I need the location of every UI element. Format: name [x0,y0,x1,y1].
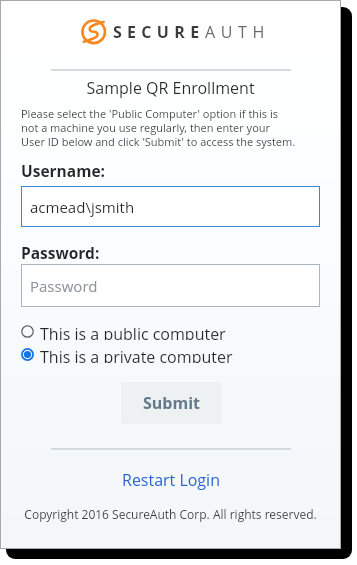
staticText: Restart Login [122,469,220,491]
staticText: AUTH [205,21,270,43]
button[interactable]: Password [21,264,320,307]
staticText: Sample QR Enrollment [0,77,341,99]
staticText: Copyright 2016 SecureAuth Corp. All righ… [0,506,341,522]
staticText: acmead\jsmith [30,197,135,217]
button[interactable]: Restart Login [0,469,341,491]
button[interactable]: acmead\jsmith [21,186,320,227]
staticText: Username: [21,160,105,181]
staticText: Password [30,276,98,296]
staticText: SECURE [113,21,205,43]
button[interactable]: This is a public computer [21,323,237,340]
staticText: Password: [21,242,100,263]
staticText: Please select the 'Public Computer' opti… [21,106,331,149]
staticText: This is a private computer [40,346,233,363]
staticText: This is a public computer [40,323,226,340]
other: SecureAuth logo [78,16,110,48]
staticText: Submit [143,392,200,414]
button[interactable]: Submit [121,382,222,424]
button[interactable]: This is a private computer [21,346,237,363]
